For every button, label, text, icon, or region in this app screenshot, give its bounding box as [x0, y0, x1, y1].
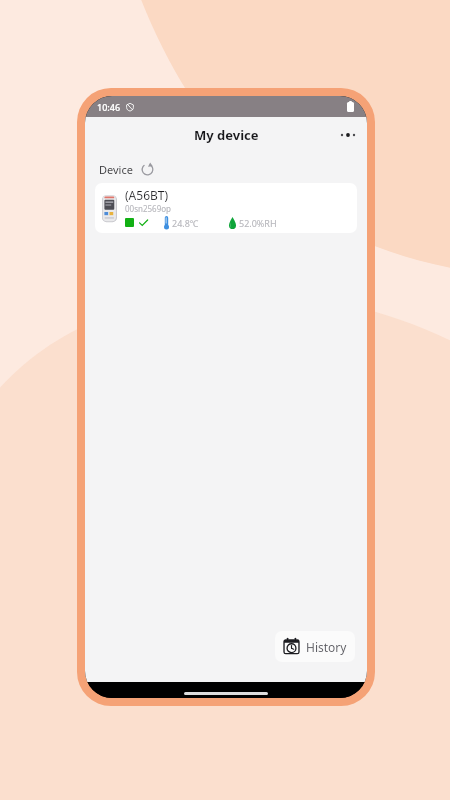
other: Humidity	[229, 217, 236, 229]
staticText: (A56BT)	[125, 187, 169, 203]
staticText: History	[306, 639, 347, 655]
staticText: 00sn2569op	[125, 203, 171, 214]
staticText: 24.8℃	[172, 217, 199, 229]
staticText: 10:46	[97, 101, 121, 113]
button[interactable]: More options	[333, 120, 363, 150]
button[interactable]: Device	[95, 183, 357, 233]
other: Refresh	[139, 161, 155, 177]
button[interactable]: History	[275, 631, 355, 662]
staticText: Device	[99, 162, 133, 177]
staticText: 52.0%RH	[239, 217, 277, 229]
staticText: My device	[194, 126, 259, 144]
other: Temperature	[164, 216, 169, 229]
button[interactable]: Device	[99, 161, 155, 177]
other: Device	[101, 194, 118, 223]
